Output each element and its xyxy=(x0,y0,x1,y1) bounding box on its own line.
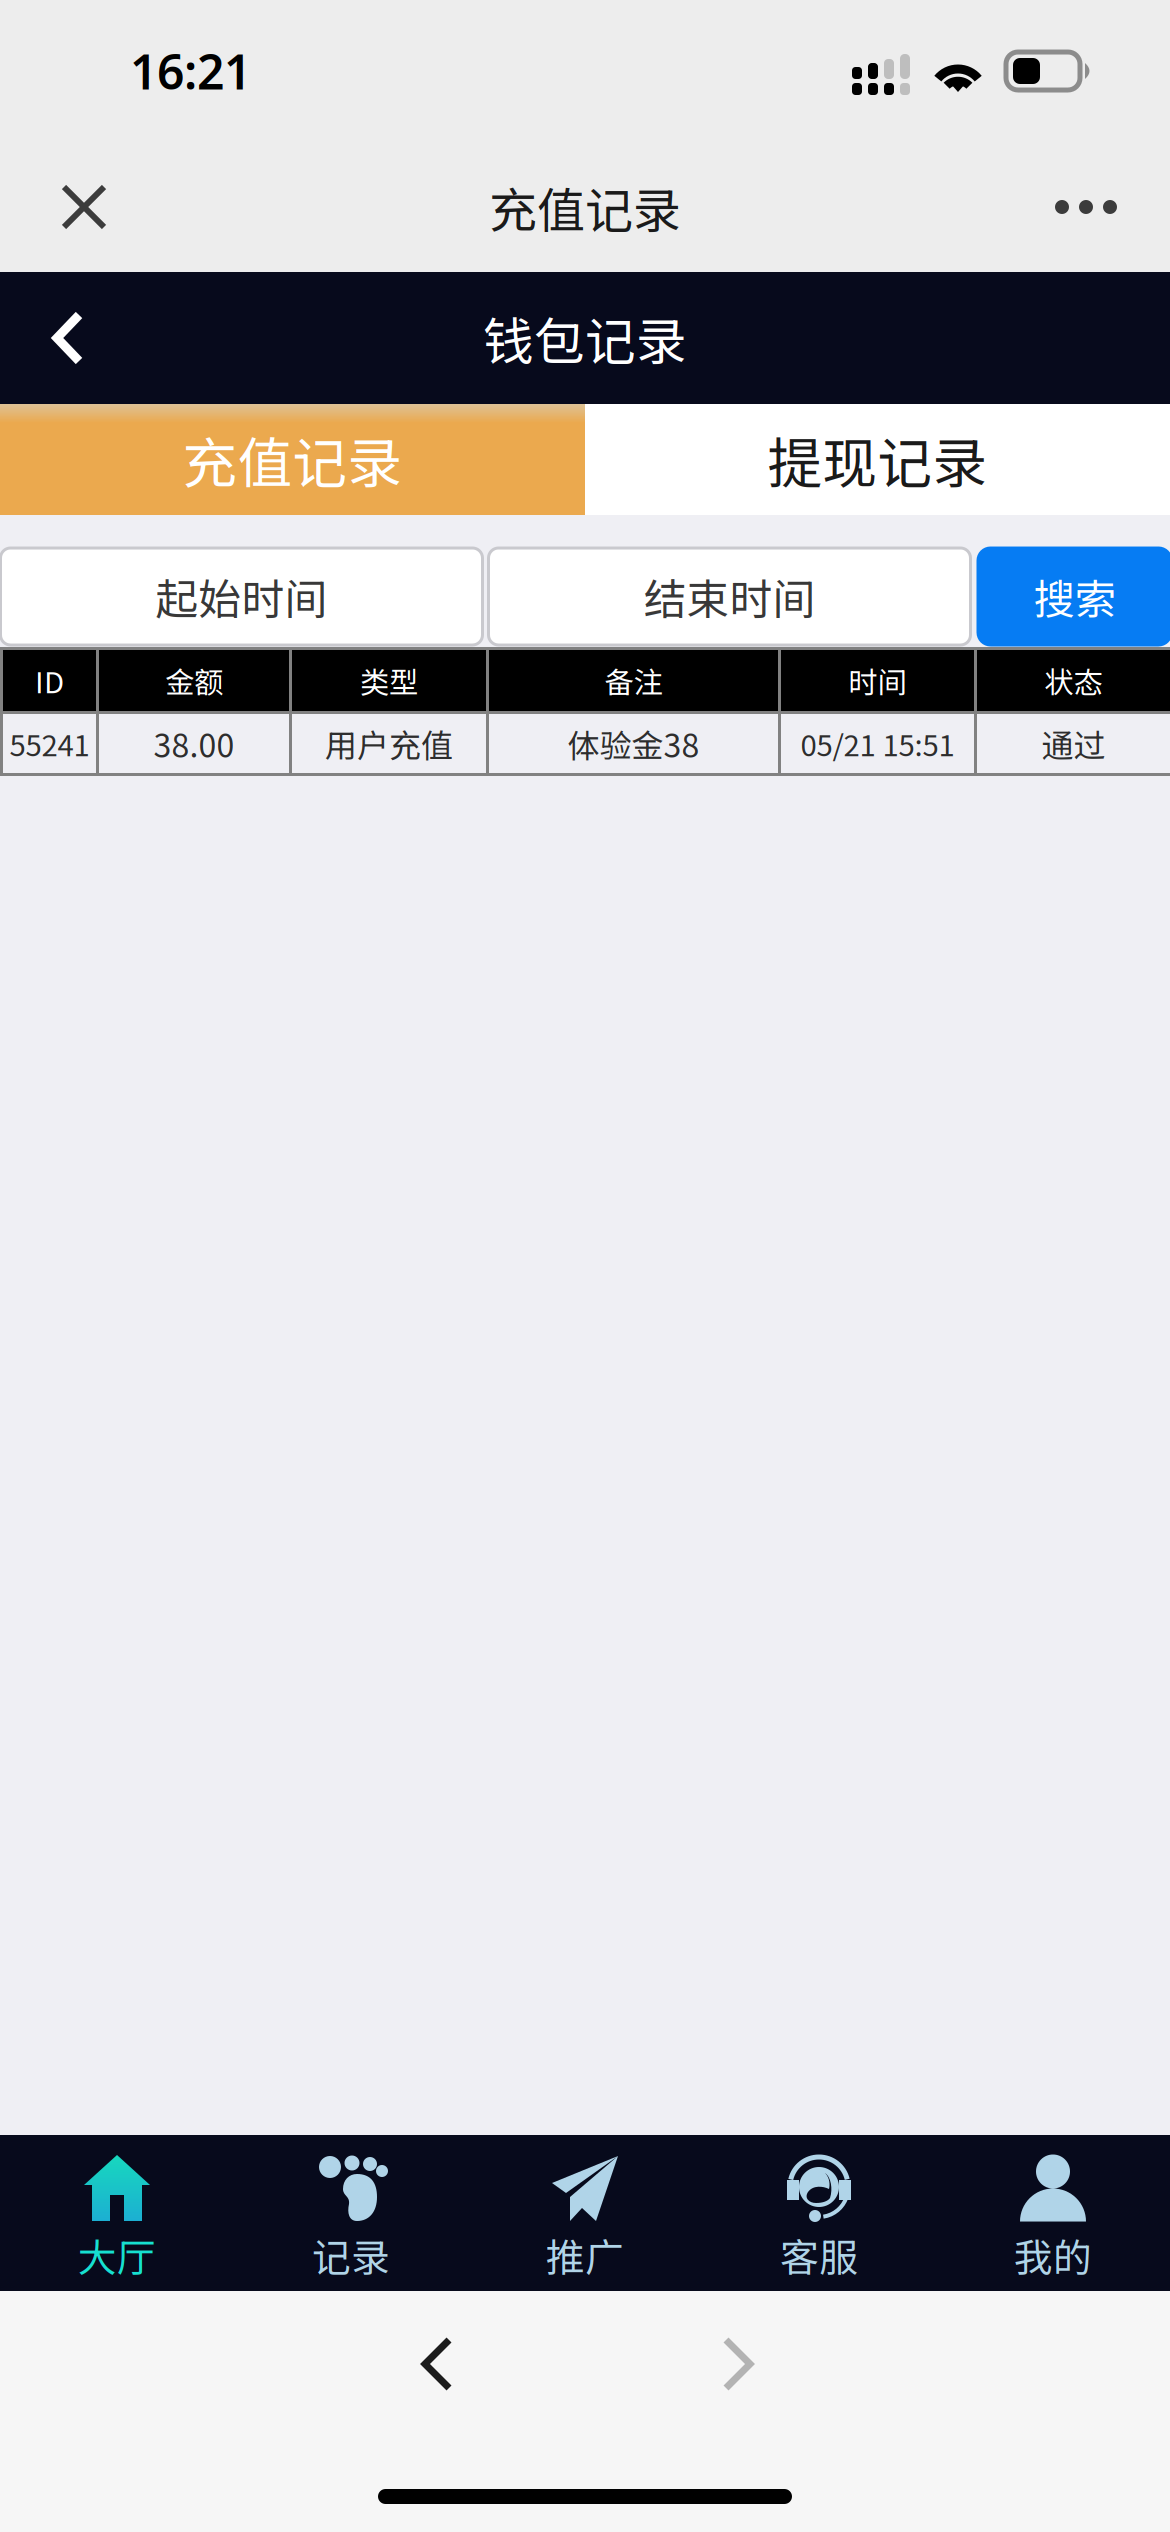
staticText: 提现记录 xyxy=(767,420,987,499)
staticText: 我的 xyxy=(1014,2227,1092,2283)
button[interactable]: 推广 xyxy=(468,2135,702,2291)
button[interactable]: 大厅 xyxy=(0,2135,234,2291)
button[interactable]: Forward xyxy=(688,2314,788,2414)
staticText: 体验金38 xyxy=(567,720,699,767)
staticText: 结束时间 xyxy=(643,566,815,627)
button[interactable]: 提现记录 xyxy=(585,404,1170,515)
staticText: 金额 xyxy=(165,659,223,702)
staticText: 备注 xyxy=(604,659,662,702)
button[interactable]: 搜索 xyxy=(976,546,1170,646)
staticText: 类型 xyxy=(360,659,418,702)
staticText: 16:21 xyxy=(130,38,251,104)
staticText: 客服 xyxy=(780,2227,858,2283)
staticText: 05/21 15:51 xyxy=(800,722,954,765)
staticText: 通过 xyxy=(1041,720,1105,767)
staticText: 大厅 xyxy=(78,2227,156,2283)
staticText: 用户充值 xyxy=(325,720,453,767)
staticText: 状态 xyxy=(1044,659,1102,702)
staticText: 时间 xyxy=(848,659,906,702)
staticText: 搜索 xyxy=(1033,567,1115,626)
staticText: 充值记录 xyxy=(489,172,681,242)
staticText: 55241 xyxy=(9,722,89,765)
button[interactable]: 起始时间 xyxy=(0,548,482,645)
button[interactable]: 客服 xyxy=(702,2135,936,2291)
staticText: ID xyxy=(35,659,64,702)
staticText: 钱包记录 xyxy=(483,301,687,375)
button[interactable]: Close xyxy=(22,144,146,270)
staticText: 38.00 xyxy=(153,720,234,767)
button[interactable]: Back xyxy=(14,272,122,404)
button[interactable]: 充值记录 xyxy=(0,404,585,515)
staticText: 记录 xyxy=(312,2227,390,2283)
button[interactable]: 我的 xyxy=(936,2135,1170,2291)
staticText: 起始时间 xyxy=(155,566,327,627)
button[interactable]: More xyxy=(1024,144,1148,270)
staticText: 推广 xyxy=(546,2227,624,2283)
button[interactable]: Back xyxy=(387,2314,487,2414)
staticText: 充值记录 xyxy=(182,420,402,499)
button[interactable]: 结束时间 xyxy=(488,548,970,645)
button[interactable]: 记录 xyxy=(234,2135,468,2291)
